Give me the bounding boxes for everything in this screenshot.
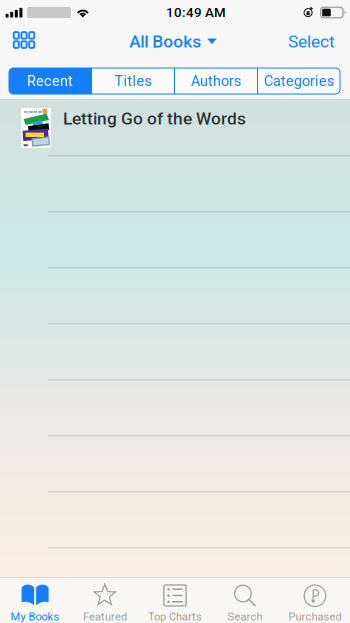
staticText: Categories <box>264 73 334 89</box>
button[interactable]: My Books <box>0 577 70 623</box>
button[interactable]: Top Charts <box>140 577 210 623</box>
staticText: 10:49 AM <box>166 5 226 20</box>
staticText: Authors <box>191 73 241 89</box>
button[interactable]: Titles <box>92 68 174 94</box>
staticText: Purchased <box>288 610 341 623</box>
staticText: Top Charts <box>148 610 202 623</box>
staticText: Search <box>227 610 262 623</box>
staticText: Titles <box>114 73 151 89</box>
button[interactable]: Search <box>210 577 280 623</box>
button[interactable]: Featured <box>70 577 140 623</box>
staticText: Letting Go of the Words <box>63 108 246 129</box>
staticText: Recent <box>27 73 73 89</box>
button[interactable]: Recent <box>9 68 91 94</box>
button[interactable]: Authors <box>175 68 257 94</box>
staticText: All Books <box>129 31 201 52</box>
staticText: Select <box>288 31 335 52</box>
button[interactable]: Collections <box>0 25 48 58</box>
staticText: Featured <box>83 610 127 623</box>
button[interactable]: Letting Go of the Words <box>0 99 350 155</box>
button[interactable]: Purchased <box>280 577 350 623</box>
button[interactable]: All Books <box>119 25 227 58</box>
staticText: My Books <box>10 610 59 623</box>
button[interactable]: Select <box>278 25 350 58</box>
button[interactable]: Categories <box>258 68 340 94</box>
